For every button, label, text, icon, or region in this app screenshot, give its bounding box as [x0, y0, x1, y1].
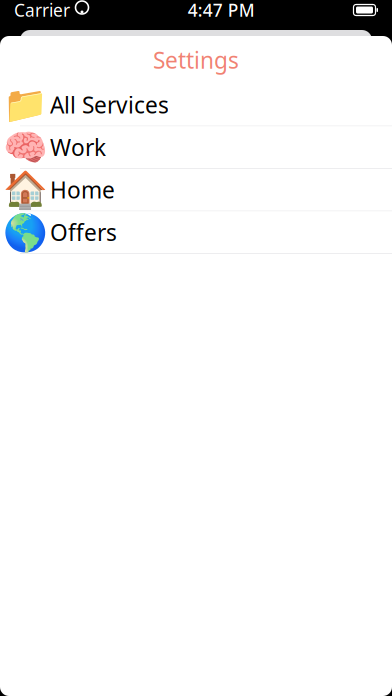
button[interactable]: 🌎 [0, 211, 392, 253]
staticText: 🧠 [2, 127, 47, 168]
staticText: All Services [50, 90, 169, 120]
button[interactable]: 🧠 [0, 126, 392, 168]
staticText: 🏠 [2, 169, 47, 210]
staticText: 📁 [2, 84, 47, 125]
staticText: 4:47 PM [188, 0, 255, 21]
staticText: Carrier [14, 0, 70, 21]
button[interactable]: 🏠 [0, 169, 392, 210]
staticText: Offers [50, 217, 117, 247]
staticText: Work [50, 132, 106, 162]
staticText: 🌎 [2, 212, 47, 253]
staticText: Home [50, 175, 115, 205]
button[interactable]: 📁 [0, 84, 392, 125]
staticText: Settings [153, 45, 239, 75]
